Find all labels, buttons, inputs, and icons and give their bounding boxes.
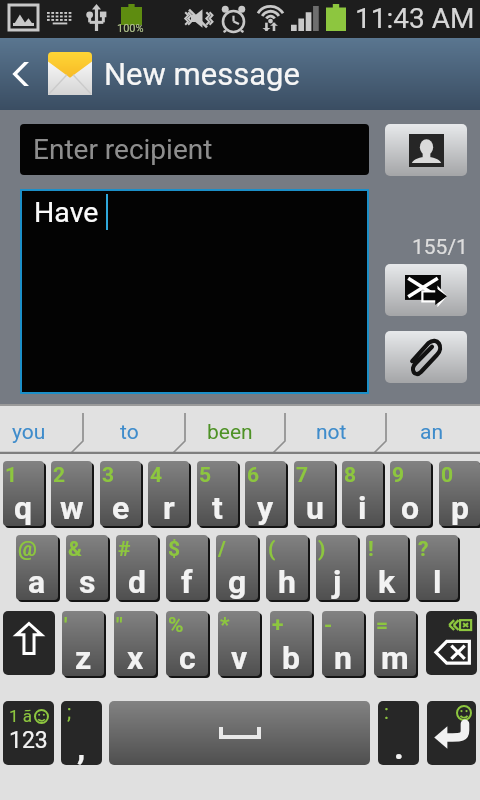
button[interactable]: Attach file xyxy=(385,331,467,383)
staticText: z xyxy=(75,639,92,676)
staticText: ! xyxy=(368,537,374,562)
button[interactable]: 0 xyxy=(439,461,480,526)
staticText: ) xyxy=(318,537,326,562)
staticText: . xyxy=(394,727,404,765)
staticText: c xyxy=(179,639,196,676)
staticText: @ xyxy=(18,537,37,562)
staticText: v xyxy=(231,639,248,676)
button[interactable]: & xyxy=(66,535,108,600)
staticText: 5 xyxy=(199,463,212,488)
staticText: x xyxy=(127,639,144,676)
button[interactable]: to xyxy=(83,404,185,454)
button[interactable]: you xyxy=(0,404,83,454)
button[interactable]: ) xyxy=(316,535,358,600)
button[interactable]: / xyxy=(216,535,258,600)
button[interactable]: # xyxy=(116,535,158,600)
staticText: = xyxy=(376,613,389,638)
staticText: e xyxy=(112,489,130,526)
staticText: not xyxy=(316,420,347,445)
button[interactable]: @ xyxy=(16,535,58,600)
staticText: # xyxy=(118,537,131,562)
staticText: s xyxy=(79,563,96,600)
staticText: 7 xyxy=(296,463,309,488)
staticText: y xyxy=(257,489,274,526)
button[interactable]: Back xyxy=(0,38,41,110)
button[interactable]: 7 xyxy=(294,461,335,526)
button[interactable]: Enter xyxy=(427,701,476,765)
button[interactable]: ; xyxy=(61,701,102,765)
staticText: l xyxy=(433,563,442,600)
staticText: & xyxy=(68,537,82,562)
staticText: w xyxy=(60,489,84,526)
button[interactable]: 5 xyxy=(197,461,238,526)
button[interactable]: " xyxy=(114,611,156,676)
button[interactable]: Enter recipient xyxy=(20,124,369,175)
staticText: / xyxy=(218,537,226,562)
staticText: 155/1 xyxy=(412,235,468,260)
button[interactable]: : xyxy=(378,701,419,765)
staticText: 8 xyxy=(344,463,357,488)
button[interactable]: an xyxy=(386,404,480,454)
staticText: been xyxy=(207,420,253,445)
staticText: k xyxy=(378,563,396,600)
button[interactable]: ' xyxy=(62,611,104,676)
staticText: * xyxy=(220,613,230,638)
staticText: 0 xyxy=(441,463,454,488)
staticText: ? xyxy=(418,537,429,562)
button[interactable]: * xyxy=(218,611,260,676)
button[interactable]: Send message xyxy=(385,264,467,316)
staticText: 4 xyxy=(150,463,163,488)
staticText: m xyxy=(381,639,409,676)
staticText: ; xyxy=(67,701,72,723)
staticText: d xyxy=(128,563,147,600)
staticText: to xyxy=(120,420,139,445)
button[interactable]: = xyxy=(374,611,416,676)
staticText: 1 xyxy=(5,463,18,488)
staticText: - xyxy=(324,613,333,638)
button[interactable]: not xyxy=(285,404,386,454)
staticText: 3 xyxy=(102,463,115,488)
staticText: 100% xyxy=(117,22,144,35)
staticText: an xyxy=(420,420,444,445)
button[interactable]: % xyxy=(166,611,208,676)
button[interactable]: 6 xyxy=(245,461,286,526)
button[interactable]: Have xyxy=(20,189,369,394)
staticText: t xyxy=(212,489,223,526)
staticText: p xyxy=(451,489,469,526)
button[interactable]: + xyxy=(270,611,312,676)
button[interactable]: ? xyxy=(416,535,458,600)
staticText: g xyxy=(228,563,247,600)
staticText: u xyxy=(306,489,324,526)
button[interactable]: Symbols xyxy=(3,701,54,765)
button[interactable]: ( xyxy=(266,535,308,600)
button[interactable]: - xyxy=(322,611,364,676)
staticText: h xyxy=(278,563,296,600)
button[interactable]: Contacts xyxy=(385,124,467,176)
staticText: New message xyxy=(104,56,300,92)
button[interactable]: 4 xyxy=(148,461,189,526)
button[interactable]: 8 xyxy=(342,461,383,526)
staticText: : xyxy=(384,701,389,723)
staticText: i xyxy=(358,489,367,526)
staticText: 1 ã xyxy=(9,706,33,726)
button[interactable]: $ xyxy=(166,535,208,600)
staticText: you xyxy=(12,420,46,445)
staticText: $ xyxy=(168,537,181,562)
staticText: r xyxy=(163,489,175,526)
button[interactable]: Backspace xyxy=(426,611,477,675)
staticText: , xyxy=(77,727,86,765)
button[interactable]: been xyxy=(185,404,285,454)
staticText: q xyxy=(14,489,33,526)
staticText: b xyxy=(282,639,300,676)
button[interactable]: Space xyxy=(109,701,370,765)
button[interactable]: Shift xyxy=(3,611,55,675)
staticText: % xyxy=(168,613,184,638)
button[interactable]: ! xyxy=(366,535,408,600)
staticText: ( xyxy=(268,537,276,562)
staticText: 11:43 AM xyxy=(355,2,475,35)
button[interactable]: 3 xyxy=(100,461,141,526)
button[interactable]: 9 xyxy=(390,461,431,526)
button[interactable]: 1 xyxy=(3,461,44,526)
button[interactable]: 2 xyxy=(51,461,92,526)
staticText: 123 xyxy=(9,727,48,754)
